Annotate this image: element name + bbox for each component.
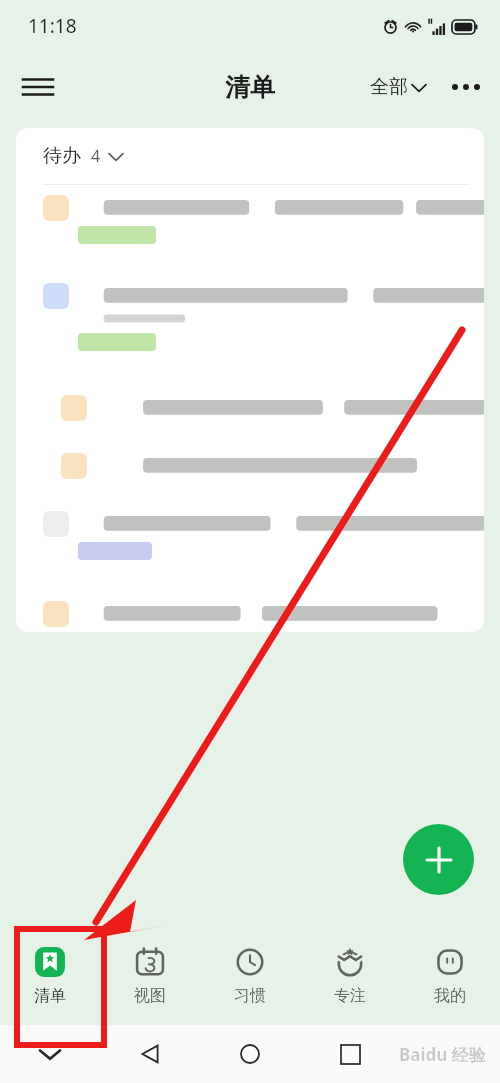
button[interactable] — [16, 273, 484, 385]
button[interactable]: 全部 — [364, 67, 432, 107]
button[interactable]: 视图 — [100, 925, 200, 1025]
staticText: 清单 — [34, 986, 66, 1006]
button[interactable]: More options — [442, 63, 490, 111]
button[interactable]: Add task — [403, 824, 474, 895]
button[interactable]: Recent apps — [300, 1025, 400, 1083]
button[interactable]: Home — [200, 1025, 300, 1083]
button[interactable]: Hide keyboard — [0, 1025, 100, 1083]
staticText: 11:18 — [28, 13, 77, 39]
button[interactable]: Menu — [14, 63, 62, 111]
staticText: 我的 — [434, 986, 466, 1006]
button[interactable] — [16, 185, 484, 273]
staticText: 视图 — [134, 986, 166, 1006]
button[interactable]: 待办 — [16, 128, 484, 184]
button[interactable] — [16, 443, 484, 501]
button[interactable]: 专注 — [300, 925, 400, 1025]
staticText: Baidu 经验 — [399, 1043, 486, 1066]
button[interactable] — [16, 501, 484, 591]
staticText: 专注 — [334, 986, 366, 1006]
button[interactable]: 我的 — [400, 925, 500, 1025]
button[interactable] — [16, 385, 484, 443]
staticText: 清单 — [225, 72, 275, 103]
staticText: 4 — [91, 145, 101, 167]
staticText: 习惯 — [234, 986, 266, 1006]
button[interactable]: 清单 — [0, 925, 100, 1025]
button[interactable]: Back — [100, 1025, 200, 1083]
button[interactable]: 习惯 — [200, 925, 300, 1025]
button[interactable] — [16, 591, 484, 632]
staticText: 全部 — [370, 75, 408, 99]
staticText: 待办 — [43, 144, 81, 168]
